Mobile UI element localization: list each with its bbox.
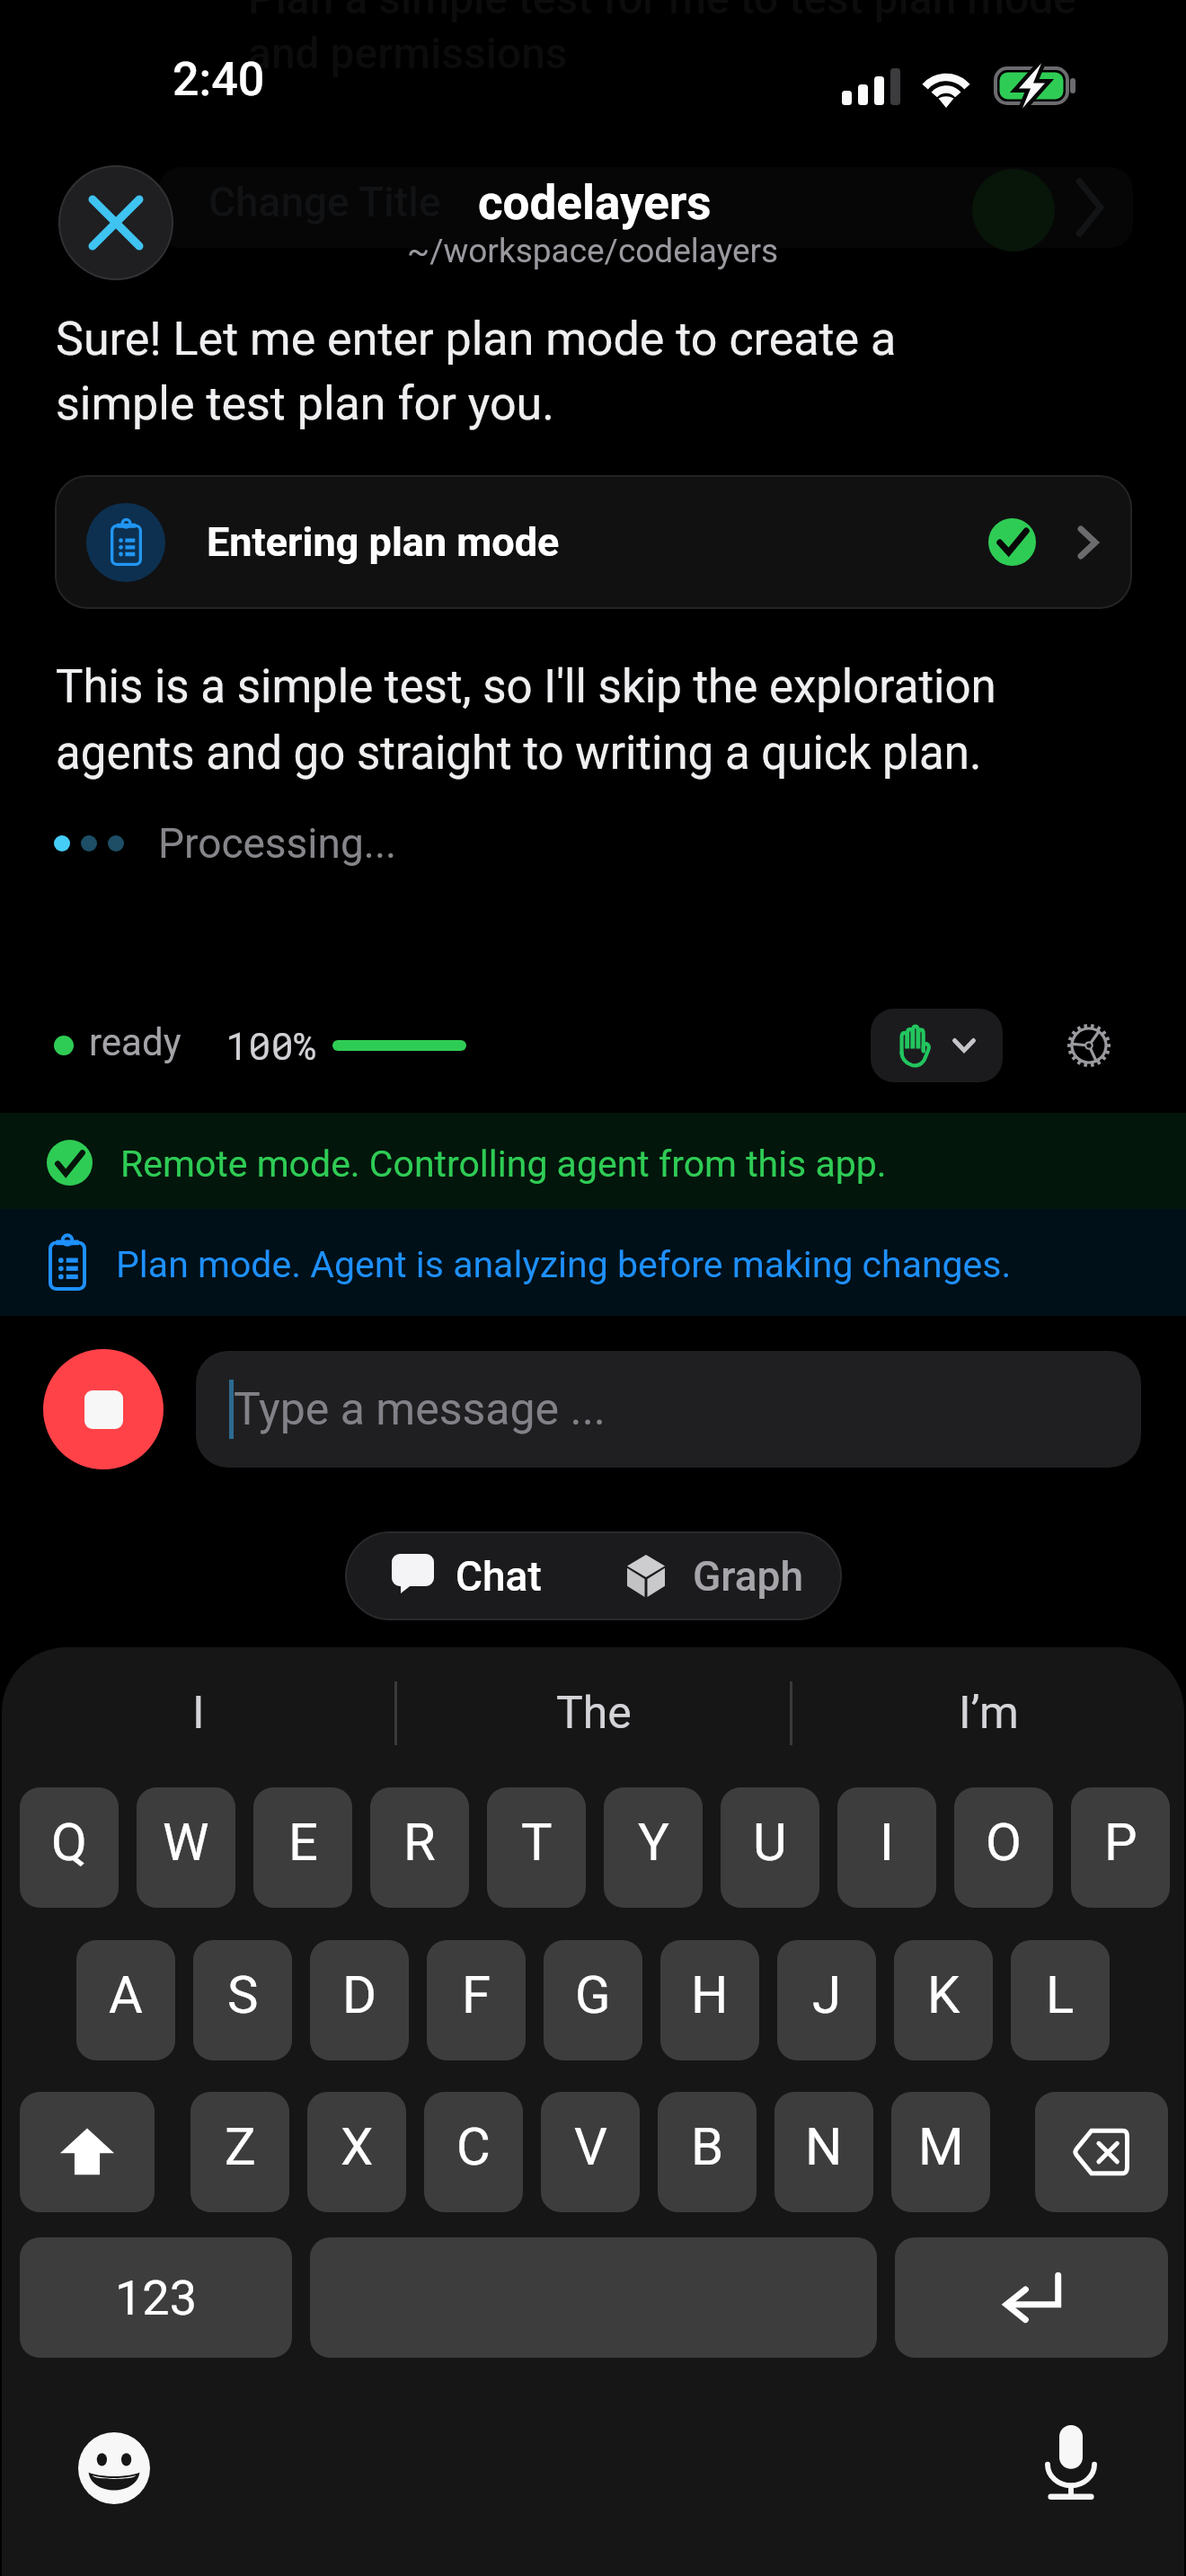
staticText: H [691,1964,729,2025]
staticText: Plan mode. Agent is analyzing before mak… [116,1243,1012,1286]
staticText: I’m [959,1687,1019,1740]
staticText: N [805,2116,843,2177]
button[interactable]: R [370,1787,469,1908]
staticText: ~/workspace/codelayers [407,232,779,270]
button[interactable]: Backspace [1035,2092,1168,2212]
staticText: Z [225,2116,256,2177]
staticText: O [986,1812,1022,1873]
staticText: Entering plan mode [207,518,560,566]
button[interactable]: Return [895,2237,1168,2358]
staticText: codelayers [478,175,712,231]
button[interactable]: Type a message ... [196,1351,1141,1468]
staticText: R [403,1812,436,1873]
staticText: 100% [226,1020,316,1070]
staticText: The [556,1687,632,1740]
staticText: 2:40 [173,52,265,107]
button[interactable]: Close [58,165,173,280]
staticText: W [163,1812,209,1873]
button[interactable]: X [307,2092,406,2212]
button[interactable]: A [76,1940,175,2060]
button[interactable]: Entering plan mode [55,475,1132,609]
staticText: Q [51,1812,87,1873]
staticText: S [227,1964,259,2025]
button[interactable]: Space [310,2237,877,2358]
staticText: Type a message ... [234,1383,606,1436]
button[interactable]: E [253,1787,352,1908]
button[interactable]: Q [20,1787,119,1908]
button[interactable]: F [427,1940,526,2060]
staticText: J [812,1964,842,2025]
staticText: M [918,2116,964,2177]
button[interactable]: Dictate [1033,2425,1109,2501]
button[interactable]: The [397,1653,790,1773]
button[interactable]: C [424,2092,523,2212]
staticText: X [341,2116,374,2177]
button[interactable]: L [1011,1940,1110,2060]
button[interactable]: I [837,1787,936,1908]
staticText: Y [638,1812,669,1873]
button[interactable]: Emoji keyboard [77,2431,151,2505]
staticText: B [691,2116,724,2177]
button[interactable]: N [774,2092,873,2212]
staticText: Graph [693,1552,803,1601]
button[interactable]: W [137,1787,235,1908]
staticText: T [521,1812,553,1873]
button[interactable]: 123 [20,2237,292,2358]
button[interactable]: I [2,1653,394,1773]
staticText: D [342,1964,377,2025]
button[interactable]: Permission mode [871,1009,1003,1082]
staticText: U [753,1812,787,1873]
button[interactable]: K [894,1940,993,2060]
staticText: Chat [456,1552,542,1601]
staticText: ready [89,1020,181,1064]
staticText: I [880,1812,894,1873]
staticText: I [192,1687,205,1740]
button[interactable]: Chat [367,1531,567,1620]
staticText: E [288,1812,318,1873]
staticText: This is a simple test, so I'll skip the … [56,660,996,780]
staticText: F [462,1964,491,2025]
staticText: K [927,1964,960,2025]
button[interactable]: J [777,1940,876,2060]
button[interactable]: Graph [602,1531,825,1620]
staticText: 123 [115,2270,198,2326]
button[interactable]: Y [604,1787,703,1908]
staticText: G [575,1964,611,2025]
button[interactable]: Z [190,2092,289,2212]
button[interactable]: V [541,2092,640,2212]
button[interactable]: D [310,1940,409,2060]
staticText: P [1104,1812,1137,1873]
button[interactable]: G [544,1940,642,2060]
staticText: Sure! Let me enter plan mode to create a… [56,312,897,431]
button[interactable]: B [658,2092,757,2212]
button[interactable]: P [1071,1787,1170,1908]
button[interactable]: U [721,1787,819,1908]
staticText: C [456,2116,491,2177]
staticText: L [1046,1964,1075,2025]
staticText: Plan a simple test for me to test plan m… [248,0,1077,79]
staticText: V [574,2116,607,2177]
button[interactable]: H [660,1940,759,2060]
staticText: Processing... [158,819,397,868]
button[interactable]: S [193,1940,292,2060]
button[interactable]: T [487,1787,586,1908]
button[interactable]: Stop [43,1349,164,1469]
button[interactable]: Settings [1067,1023,1111,1068]
staticText: Remote mode. Controlling agent from this… [120,1142,887,1186]
button[interactable]: Shift [20,2092,155,2212]
button[interactable]: I’m [792,1653,1185,1773]
staticText: A [109,1964,143,2025]
button[interactable]: O [954,1787,1053,1908]
button[interactable]: M [891,2092,990,2212]
staticText: Change Title [208,178,441,226]
